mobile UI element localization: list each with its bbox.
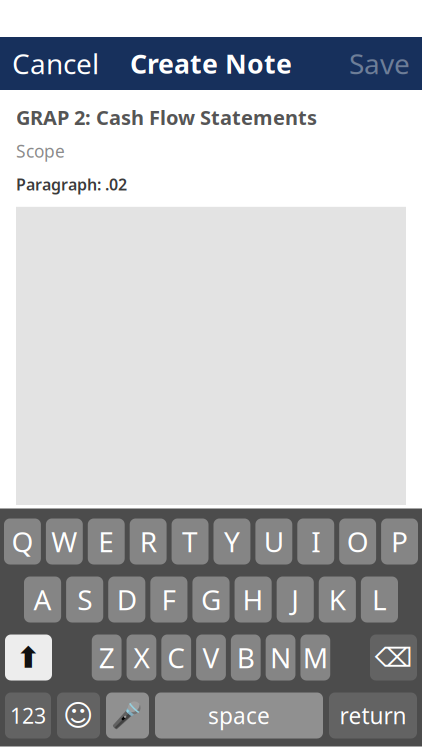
staticText: M	[303, 639, 328, 676]
button[interactable]: W	[46, 518, 83, 564]
staticText: Paragraph: .02	[16, 174, 127, 195]
staticText: GRAP 2: Cash Flow Statements	[16, 104, 317, 131]
button[interactable]: O	[339, 518, 376, 564]
button[interactable]: Shift	[5, 634, 52, 680]
staticText: J	[291, 581, 299, 618]
button[interactable]: space	[155, 692, 323, 738]
staticText: E	[98, 523, 114, 560]
button[interactable]: Dictation	[106, 692, 149, 738]
button[interactable]: Save	[337, 37, 422, 90]
button[interactable]: return	[329, 692, 417, 738]
staticText: K	[329, 581, 346, 618]
staticText: ⬆	[16, 641, 41, 674]
staticText: I	[311, 523, 320, 560]
staticText: O	[347, 523, 369, 560]
button[interactable]: N	[266, 634, 295, 680]
button[interactable]: Q	[4, 518, 41, 564]
button[interactable]: 123	[5, 692, 51, 738]
staticText: Y	[224, 523, 240, 560]
staticText: A	[34, 581, 52, 618]
button[interactable]: I	[297, 518, 334, 564]
staticText: Create Note	[130, 46, 292, 81]
staticText: space	[208, 700, 270, 730]
staticText: T	[182, 523, 198, 560]
button[interactable]: S	[66, 576, 103, 622]
button[interactable]: U	[255, 518, 292, 564]
button[interactable]: G	[192, 576, 229, 622]
staticText: N	[270, 639, 291, 676]
staticText: L	[372, 581, 387, 618]
staticText: 123	[10, 701, 46, 730]
button[interactable]: H	[235, 576, 272, 622]
button[interactable]: M	[300, 634, 330, 680]
staticText: B	[237, 639, 255, 676]
staticText: C	[167, 639, 185, 676]
staticText: P	[391, 523, 408, 560]
staticText: 🎤	[111, 701, 143, 730]
staticText: H	[243, 581, 264, 618]
button[interactable]: A	[24, 576, 61, 622]
staticText: ☺	[63, 699, 94, 732]
staticText: S	[77, 581, 92, 618]
button[interactable]: V	[196, 634, 226, 680]
staticText: V	[202, 639, 219, 676]
staticText: U	[264, 523, 284, 560]
staticText: G	[201, 581, 221, 618]
staticText: ⌫	[374, 642, 412, 673]
button[interactable]: Y	[213, 518, 250, 564]
button[interactable]: C	[161, 634, 191, 680]
staticText: D	[117, 581, 137, 618]
button[interactable]: P	[381, 518, 418, 564]
staticText: Save	[349, 45, 410, 82]
button[interactable]: J	[277, 576, 314, 622]
button[interactable]: F	[150, 576, 187, 622]
button[interactable]: Delete	[370, 634, 417, 680]
staticText: W	[51, 523, 77, 560]
button[interactable]: Cancel	[0, 37, 111, 90]
staticText: Cancel	[12, 45, 99, 82]
staticText: Scope	[16, 140, 65, 163]
button[interactable]: E	[88, 518, 125, 564]
button[interactable]: D	[108, 576, 145, 622]
staticText: return	[339, 700, 406, 730]
button[interactable]: B	[231, 634, 261, 680]
staticText: Z	[99, 639, 115, 676]
staticText: R	[140, 523, 157, 560]
button[interactable]: T	[172, 518, 208, 564]
staticText: F	[161, 581, 176, 618]
button[interactable]: K	[319, 576, 356, 622]
button[interactable]: Emoji	[57, 692, 100, 738]
button[interactable]: X	[127, 634, 156, 680]
staticText: Q	[11, 523, 33, 560]
button[interactable]: L	[361, 576, 398, 622]
staticText: X	[133, 639, 149, 676]
button[interactable]: Z	[92, 634, 122, 680]
button[interactable]: R	[130, 518, 167, 564]
